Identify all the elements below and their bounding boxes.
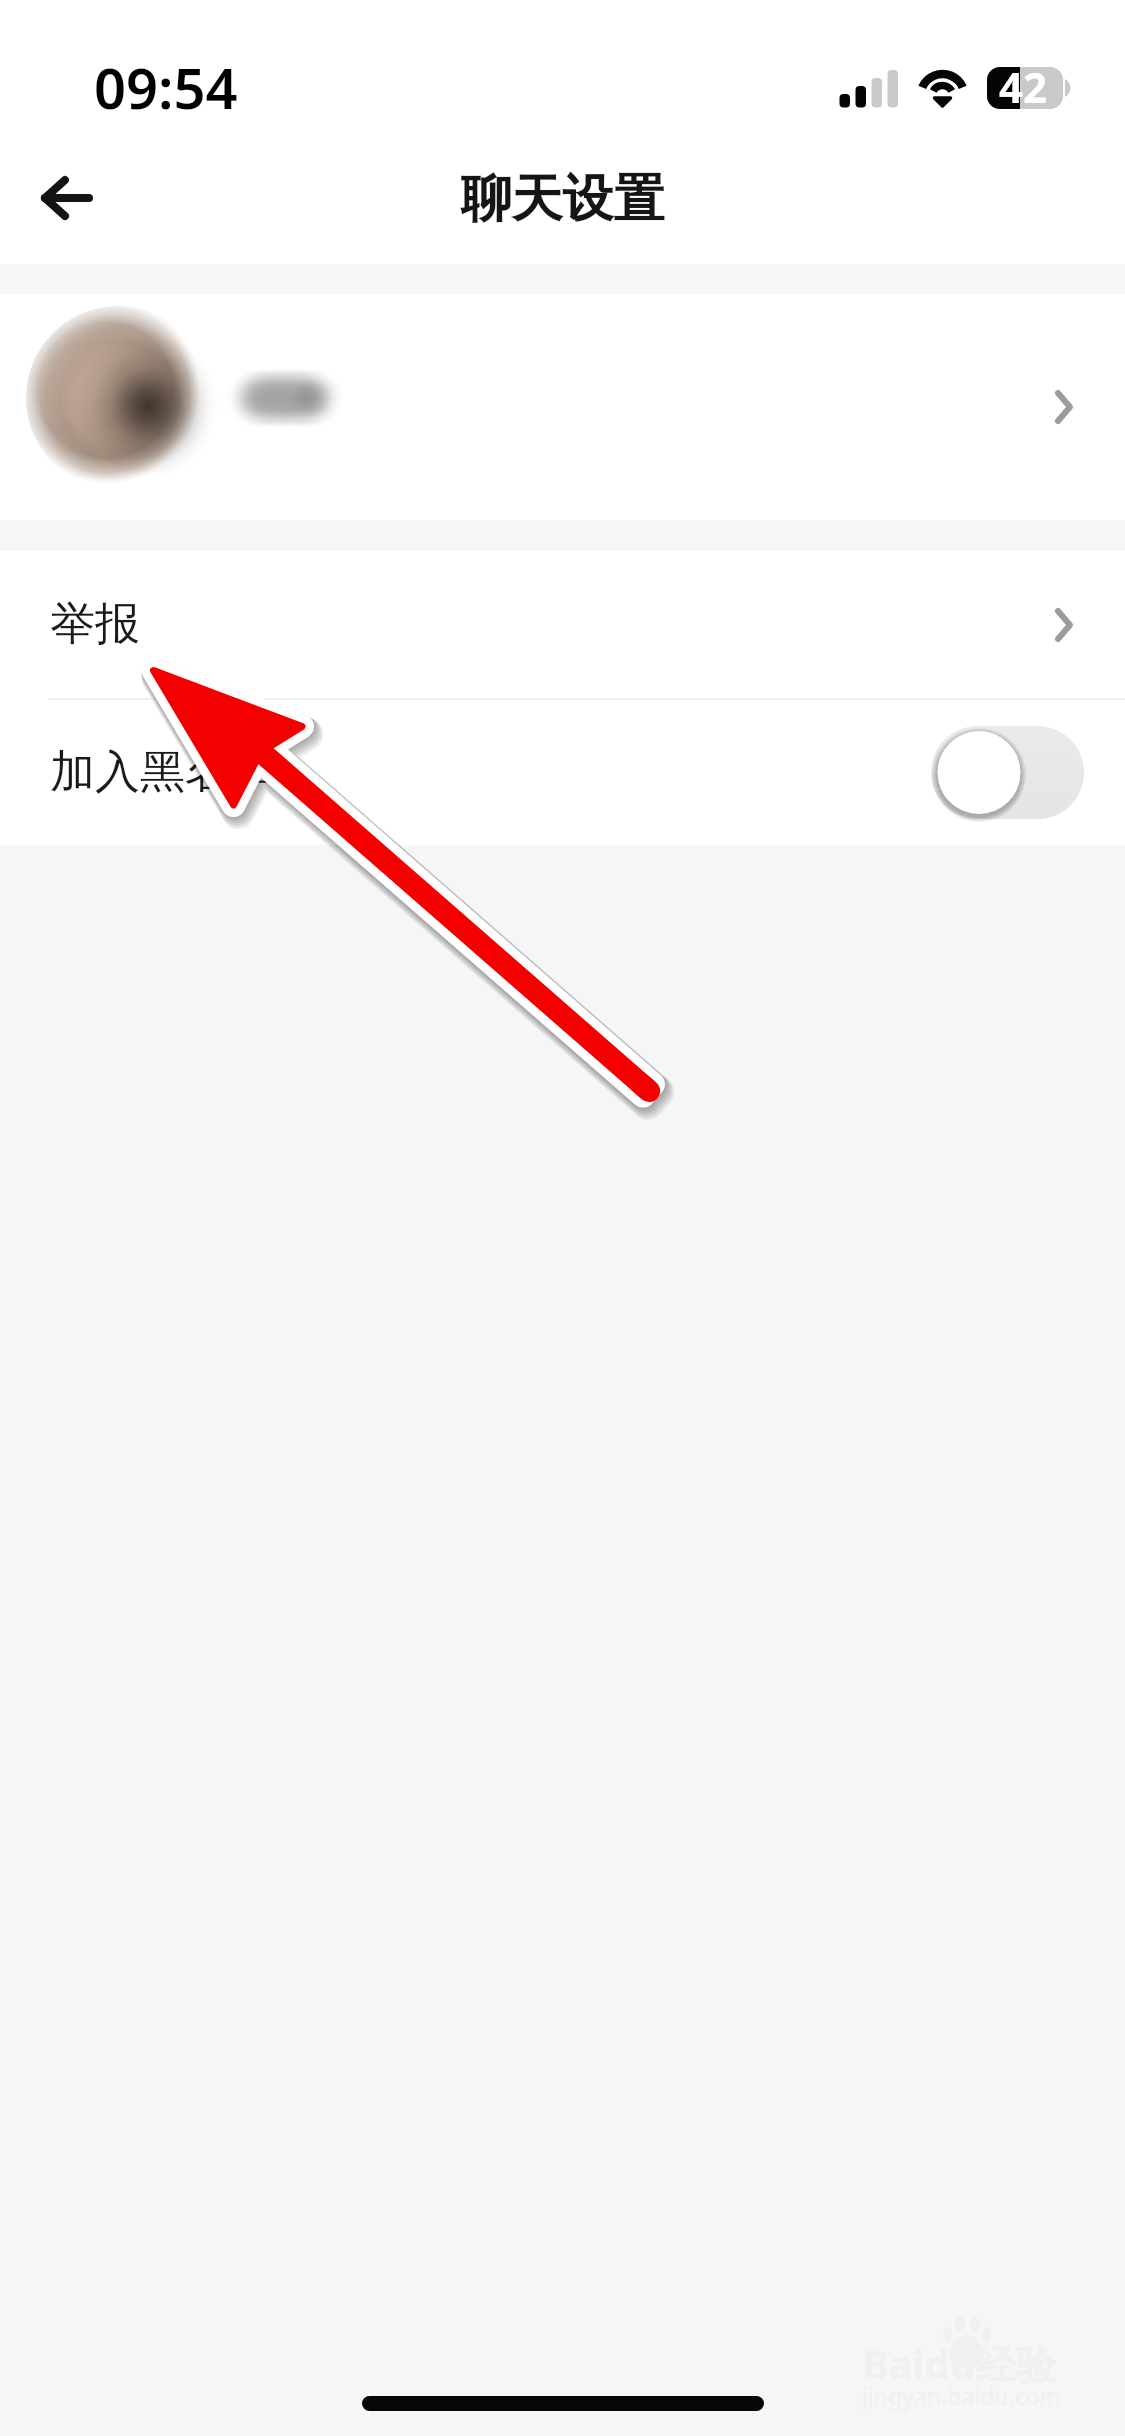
staticText: 举报 <box>50 596 140 653</box>
button[interactable]: Back <box>24 155 110 241</box>
button[interactable]: 举报 <box>0 551 1125 698</box>
button[interactable]: Add to blacklist toggle <box>931 726 1084 819</box>
staticText: 聊天设置 <box>0 167 1125 231</box>
staticText: 加入黑名单 <box>50 744 275 801</box>
staticText: 09:54 <box>94 49 238 125</box>
button[interactable] <box>0 294 1125 520</box>
button[interactable]: 加入黑名单 <box>0 700 1125 845</box>
staticText: 42 <box>999 58 1048 115</box>
